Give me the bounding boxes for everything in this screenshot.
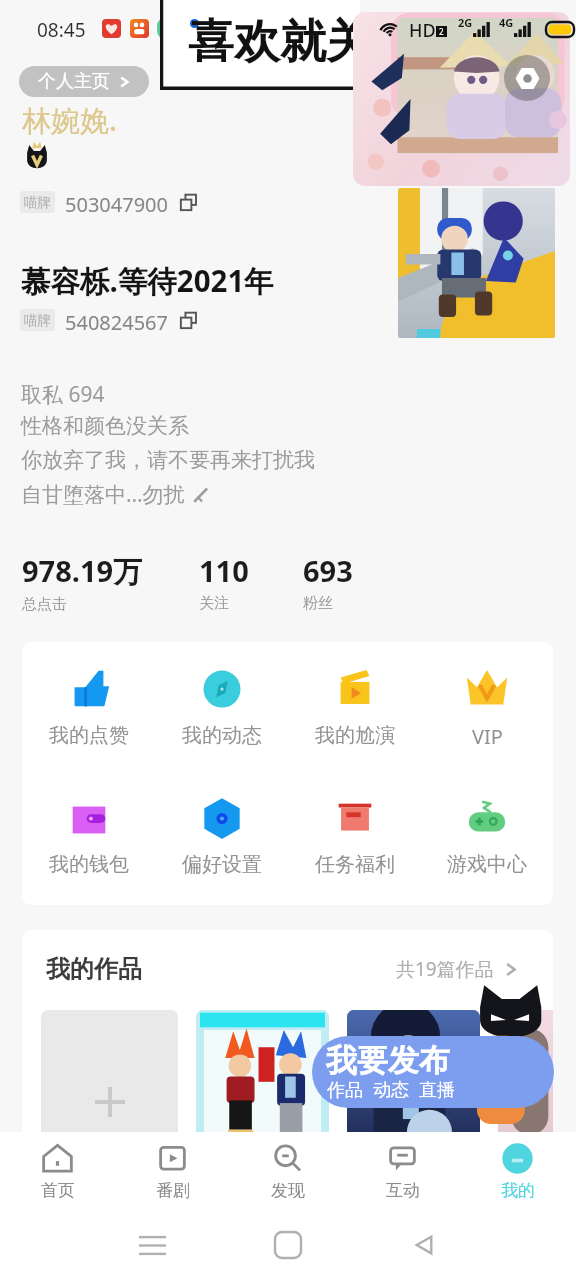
staticText: 2 — [439, 26, 444, 37]
staticText: 总点击 — [22, 595, 67, 614]
button[interactable]: 我的动态 — [155, 667, 288, 748]
staticText: VIP — [472, 723, 503, 750]
staticText: 我的点赞 — [49, 723, 129, 748]
button[interactable]: 个人主页 — [19, 66, 149, 97]
staticText: 直播 — [419, 1079, 455, 1102]
button[interactable]: Copy ID — [177, 309, 199, 331]
staticText: 110 — [199, 551, 249, 590]
staticText: 喵牌 — [24, 194, 51, 211]
staticText: 慕容栎.等待2021年 — [21, 260, 274, 300]
button[interactable]: Recents — [130, 1223, 174, 1267]
button[interactable]: VIP — [421, 667, 553, 750]
button[interactable]: 共19篇作品 — [396, 956, 519, 982]
staticText: 喜欢就关注 — [188, 13, 360, 71]
button[interactable]: 我的尬演 — [288, 667, 421, 748]
staticText: 693 — [303, 551, 353, 590]
staticText: 动态 — [373, 1079, 409, 1102]
staticText: 番剧 — [156, 1180, 190, 1201]
staticText: HD — [409, 18, 436, 40]
button[interactable]: 游戏中心 — [421, 796, 553, 877]
button[interactable]: Add work — [41, 1010, 178, 1143]
staticText: 我的动态 — [182, 723, 262, 748]
staticText: 取私 694 — [21, 380, 105, 409]
staticText: 自甘堕落中…勿扰 — [21, 480, 185, 509]
staticText: 林婉娩. — [22, 100, 117, 140]
button[interactable]: 番剧 — [115, 1142, 230, 1201]
staticText: 我的作品 — [46, 954, 142, 984]
button[interactable]: Back — [402, 1223, 446, 1267]
button[interactable]: 偏好设置 — [155, 796, 288, 877]
button[interactable]: 110 — [199, 551, 303, 613]
staticText: 503047900 — [65, 191, 168, 213]
button[interactable]: Copy ID — [177, 191, 199, 213]
button[interactable]: 我的钱包 — [22, 796, 155, 877]
button[interactable]: 发现 — [230, 1142, 345, 1201]
staticText: 粉丝 — [303, 594, 333, 613]
button[interactable]: 任务福利 — [288, 796, 421, 877]
button[interactable]: 我的点赞 — [22, 667, 155, 748]
button[interactable]: 互动 — [345, 1142, 460, 1201]
staticText: 4G — [499, 15, 514, 30]
staticText: 我的钱包 — [49, 852, 129, 877]
staticText: 978.19万 — [22, 551, 143, 591]
button[interactable]: 首页 — [0, 1142, 115, 1201]
staticText: 首页 — [41, 1180, 75, 1201]
button[interactable]: Work thumbnail — [498, 1010, 553, 1143]
staticText: 个人主页 — [38, 70, 110, 93]
staticText: 互动 — [386, 1180, 420, 1201]
staticText: 08:45 — [37, 17, 86, 39]
staticText: 游戏中心 — [447, 852, 527, 877]
staticText: 我的尬演 — [315, 723, 395, 748]
staticText: 关注 — [199, 594, 229, 613]
staticText: 共19篇作品 — [396, 956, 494, 982]
button[interactable]: 我要发布 — [312, 1036, 554, 1108]
staticText: 540824567 — [65, 309, 168, 331]
button[interactable]: Edit signature — [190, 484, 212, 506]
button[interactable]: Work thumbnail — [347, 1010, 480, 1143]
button[interactable]: 我的 — [460, 1142, 575, 1201]
staticText: 2G — [458, 15, 473, 30]
button[interactable]: Home — [266, 1223, 310, 1267]
staticText: 我要发布 — [326, 1041, 450, 1080]
button[interactable]: 978.19万 — [22, 551, 199, 614]
staticText: 作品 — [327, 1079, 363, 1102]
staticText: 偏好设置 — [182, 852, 262, 877]
button[interactable]: Settings — [504, 55, 550, 101]
staticText: 发现 — [271, 1180, 305, 1201]
staticText: 任务福利 — [315, 852, 395, 877]
staticText: 喵牌 — [24, 312, 51, 329]
staticText: 你放弃了我，请不要再来打扰我 — [21, 447, 315, 473]
button[interactable]: Floating video — [398, 188, 555, 338]
button[interactable]: Work thumbnail — [196, 1010, 329, 1143]
staticText: 性格和颜色没关系 — [21, 413, 189, 439]
button[interactable]: 693 — [303, 551, 407, 613]
staticText: 我的 — [501, 1180, 535, 1201]
